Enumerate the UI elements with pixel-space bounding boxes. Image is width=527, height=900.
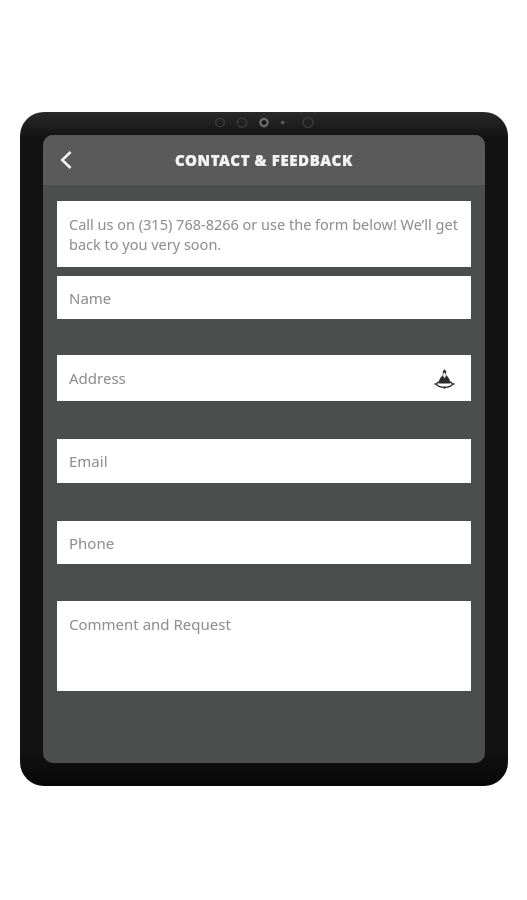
staticText: Comment and Request [69, 614, 231, 634]
button[interactable]: Comment and Request [57, 601, 471, 691]
button[interactable]: Call us on (315) 768-8266 or use the for… [57, 201, 471, 267]
button[interactable]: Back [43, 136, 91, 184]
button[interactable]: Address [57, 355, 471, 401]
button[interactable]: Email [57, 439, 471, 483]
staticText: Call us on (315) 768-8266 or use the for… [69, 214, 459, 255]
staticText: Address [69, 368, 126, 388]
button[interactable]: Name [57, 276, 471, 319]
staticText: Name [69, 288, 112, 308]
staticText: Phone [69, 533, 115, 553]
staticText: Email [69, 451, 108, 471]
button[interactable]: Phone [57, 521, 471, 564]
staticText: CONTACT & FEEDBACK [175, 150, 353, 170]
button[interactable]: Use my location [429, 363, 459, 393]
